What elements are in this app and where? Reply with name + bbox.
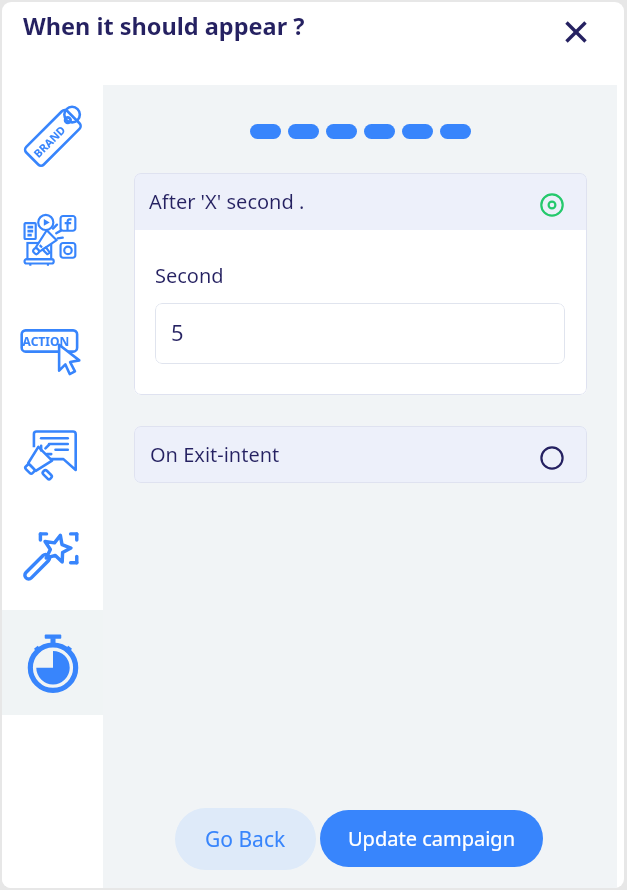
button[interactable]: Close — [555, 11, 597, 53]
button[interactable]: Social channels — [2, 190, 103, 295]
staticText: When it should appear ? — [23, 10, 305, 42]
staticText: Go Back — [205, 825, 286, 854]
button[interactable]: Brand — [2, 85, 103, 190]
button[interactable]: Call to action — [2, 295, 103, 400]
button[interactable]: Messages — [2, 400, 103, 505]
button[interactable]: On Exit-intent — [134, 426, 587, 483]
button[interactable]: Step 3 — [326, 124, 357, 139]
button[interactable]: Step 5 — [402, 124, 433, 139]
other: Not selected — [540, 446, 564, 470]
button[interactable]: Step 6 — [440, 124, 471, 139]
button[interactable]: Step 1 — [250, 124, 281, 139]
staticText: After 'X' second . — [149, 188, 305, 215]
button[interactable]: Customize — [2, 505, 103, 610]
staticText: Second — [155, 262, 224, 289]
staticText: On Exit-intent — [150, 441, 280, 468]
button[interactable]: After 'X' second . — [134, 173, 587, 230]
button[interactable]: Update campaign — [320, 810, 543, 867]
button[interactable]: Step 2 — [288, 124, 319, 139]
button[interactable]: Step 4 — [364, 124, 395, 139]
staticText: Update campaign — [348, 825, 515, 852]
button[interactable]: Go Back — [175, 808, 316, 870]
staticText: 5 — [171, 317, 184, 347]
button[interactable]: Timing — [2, 610, 103, 715]
button[interactable]: 5 — [155, 303, 565, 364]
other: Selected — [540, 193, 564, 217]
